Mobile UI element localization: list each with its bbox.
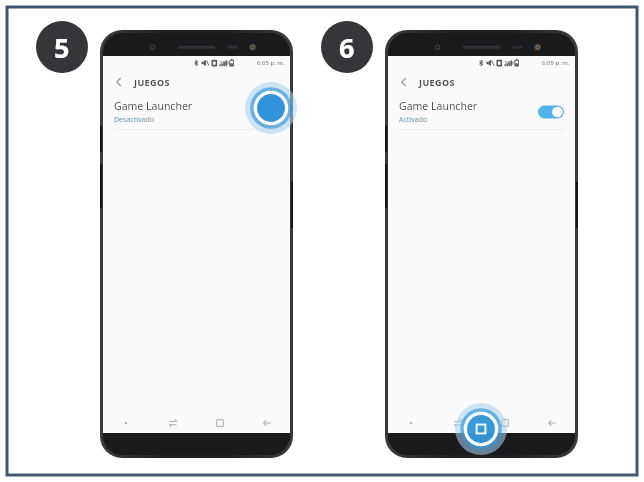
button[interactable]: Home [481, 413, 528, 433]
button[interactable]: Home [196, 413, 243, 433]
staticText: 6:05 p. m. [257, 59, 285, 67]
staticText: Game Launcher [399, 99, 478, 113]
button[interactable]: Back [528, 413, 575, 433]
button[interactable]: Recents [149, 413, 196, 433]
staticText: 26% [504, 59, 516, 67]
button[interactable]: Back [388, 69, 575, 95]
staticText: 5 [54, 29, 70, 66]
staticText: JUEGOS [134, 76, 170, 88]
button[interactable]: Back [397, 75, 411, 89]
button[interactable]: Back [112, 75, 126, 89]
button[interactable]: Game Launcher toggle [538, 105, 564, 119]
staticText: JUEGOS [419, 76, 455, 88]
button[interactable]: Tap here [455, 403, 507, 455]
button[interactable]: Back [243, 413, 290, 433]
staticText: Desactivado [114, 115, 155, 125]
staticText: 26% [219, 59, 231, 67]
staticText: 6:05 p. m. [542, 59, 570, 67]
button[interactable]: Game Launcher [388, 95, 575, 129]
button[interactable]: Tap here [245, 82, 297, 134]
button[interactable]: Recents [434, 413, 481, 433]
staticText: Activado [399, 115, 428, 125]
button[interactable]: Back [103, 69, 290, 95]
button[interactable]: Game Launcher [103, 95, 290, 129]
staticText: Game Launcher [114, 99, 193, 113]
staticText: 6 [339, 29, 355, 66]
button[interactable]: Menu [388, 413, 434, 433]
button[interactable]: Menu [103, 413, 149, 433]
